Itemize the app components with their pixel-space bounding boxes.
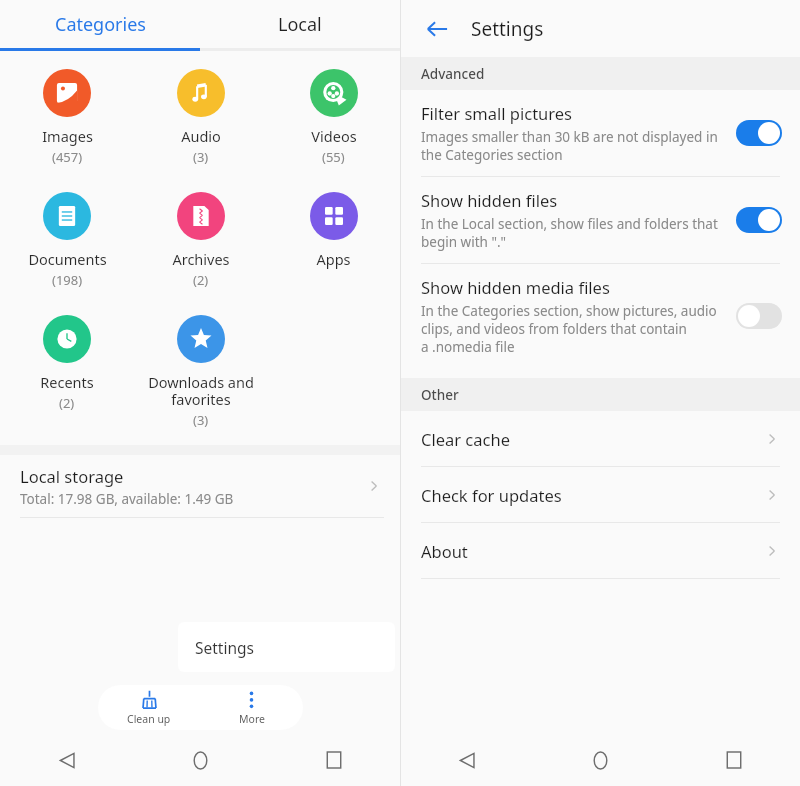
staticText: Archives xyxy=(172,249,230,269)
button[interactable]: Back xyxy=(401,734,534,786)
button[interactable]: Apps xyxy=(267,190,400,271)
button[interactable]: About xyxy=(401,523,800,578)
button[interactable]: Clear cache xyxy=(401,411,800,466)
staticText: Local storage xyxy=(20,465,124,487)
staticText: Settings xyxy=(471,16,544,42)
staticText: Documents xyxy=(28,249,107,269)
staticText: (3) xyxy=(193,148,209,166)
button[interactable]: Local storage xyxy=(0,455,400,518)
staticText: In the Local section, show files and fol… xyxy=(421,215,718,251)
button[interactable]: Documents xyxy=(0,190,134,291)
button[interactable]: Back xyxy=(0,734,134,786)
staticText: Clear cache xyxy=(421,428,762,450)
staticText: Advanced xyxy=(421,65,485,83)
button[interactable]: Recents xyxy=(0,313,134,414)
staticText: (3) xyxy=(193,411,209,429)
staticText: (2) xyxy=(193,271,209,289)
button[interactable]: Home xyxy=(134,734,267,786)
button[interactable]: Clean up xyxy=(98,685,200,730)
button[interactable]: Recents xyxy=(267,734,400,786)
staticText: In the Categories section, show pictures… xyxy=(421,302,717,356)
staticText: More xyxy=(239,712,265,726)
staticText: Settings xyxy=(195,637,254,658)
staticText: (2) xyxy=(59,394,75,412)
staticText: About xyxy=(421,540,762,562)
button[interactable]: Images xyxy=(0,67,134,168)
button[interactable]: Home xyxy=(534,734,667,786)
staticText: Categories xyxy=(55,12,146,37)
staticText: Videos xyxy=(311,126,357,146)
staticText: Images smaller than 30 kB are not displa… xyxy=(421,128,718,164)
staticText: Images xyxy=(42,126,93,146)
staticText: Other xyxy=(421,386,459,404)
button[interactable]: Toggle xyxy=(736,207,782,233)
button[interactable]: Audio xyxy=(134,67,267,168)
button[interactable]: Toggle xyxy=(736,120,782,146)
staticText: Downloads and favorites xyxy=(148,372,254,409)
staticText: (457) xyxy=(52,148,83,166)
button[interactable]: Back xyxy=(417,9,457,49)
staticText: Show hidden files xyxy=(421,189,558,211)
staticText: Filter small pictures xyxy=(421,102,573,124)
staticText: (198) xyxy=(52,271,83,289)
button[interactable]: More xyxy=(200,685,303,730)
button[interactable]: Local xyxy=(200,0,400,48)
staticText: Total: 17.98 GB, available: 1.49 GB xyxy=(20,490,234,508)
button[interactable]: Show hidden files xyxy=(401,177,800,263)
button[interactable]: Check for updates xyxy=(401,467,800,522)
button[interactable]: Downloads and favorites xyxy=(134,313,267,431)
button[interactable]: Filter small pictures xyxy=(401,90,800,176)
staticText: Local xyxy=(278,12,322,37)
staticText: Recents xyxy=(40,372,94,392)
staticText: Show hidden media files xyxy=(421,276,610,298)
staticText: Apps xyxy=(316,249,351,269)
button[interactable]: Recents xyxy=(667,734,800,786)
button[interactable]: Archives xyxy=(134,190,267,291)
staticText: (55) xyxy=(322,148,345,166)
button[interactable]: Categories xyxy=(0,0,200,48)
staticText: Check for updates xyxy=(421,484,762,506)
button[interactable]: Toggle xyxy=(736,303,782,329)
staticText: Audio xyxy=(181,126,221,146)
staticText: Clean up xyxy=(127,712,171,726)
button[interactable]: Videos xyxy=(267,67,400,168)
button[interactable]: Settings xyxy=(178,622,395,672)
button[interactable]: Show hidden media files xyxy=(401,264,800,368)
